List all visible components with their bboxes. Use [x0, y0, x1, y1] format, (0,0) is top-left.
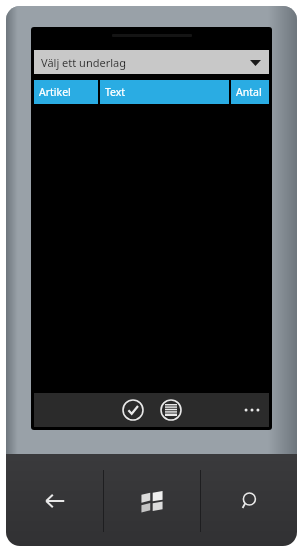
button[interactable]: Accept	[120, 397, 146, 423]
button[interactable]: Antal	[231, 80, 269, 104]
button[interactable]: Back	[6, 456, 103, 546]
staticText: Välj ett underlag	[41, 55, 126, 70]
button[interactable]: More	[239, 397, 265, 423]
button[interactable]: Välj ett underlag	[34, 50, 269, 74]
button[interactable]: Text	[100, 80, 229, 104]
staticText: Artikel	[39, 85, 71, 99]
button[interactable]: Search	[201, 456, 297, 546]
staticText: Text	[105, 85, 126, 99]
button[interactable]: Artikel	[34, 80, 98, 104]
staticText: Antal	[236, 85, 262, 99]
button[interactable]: Start	[104, 456, 200, 546]
button[interactable]: List	[158, 397, 184, 423]
